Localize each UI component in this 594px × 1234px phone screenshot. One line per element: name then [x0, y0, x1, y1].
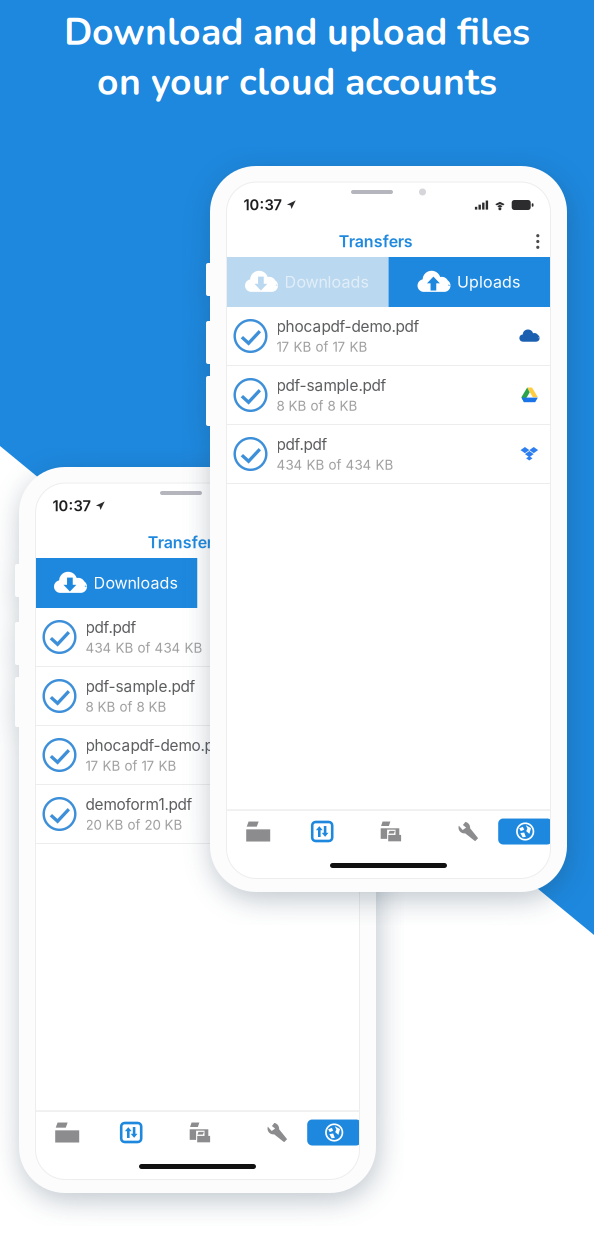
button[interactable]: Downloads: [226, 257, 388, 307]
staticText: 17 KB of 17 KB: [85, 758, 176, 774]
button[interactable]: Transfers: [295, 811, 349, 851]
staticText: 434 KB of 434 KB: [85, 640, 202, 656]
staticText: demoform1.pdf: [85, 795, 192, 814]
staticText: Transfers: [339, 232, 413, 251]
button[interactable]: Copy: [364, 811, 418, 851]
button[interactable]: Copy: [173, 1112, 227, 1152]
button[interactable]: Uploads: [388, 257, 550, 307]
button[interactable]: Settings: [441, 811, 495, 851]
button[interactable]: demoform1.pdf: [35, 785, 359, 843]
staticText: Downloads: [284, 272, 368, 292]
staticText: phocapdf-demo.pdf: [85, 736, 228, 755]
staticText: 8 KB of 8 KB: [85, 699, 166, 715]
staticText: 10:37: [52, 497, 90, 515]
button[interactable]: pdf-sample.pdf: [226, 366, 550, 424]
button[interactable]: pdf-sample.pdf: [35, 667, 359, 725]
button[interactable]: Downloads: [35, 558, 197, 608]
button[interactable]: pdf.pdf: [226, 425, 550, 483]
staticText: 17 KB of 17 KB: [276, 339, 367, 355]
staticText: pdf-sample.pdf: [85, 677, 195, 696]
staticText: Downloads: [93, 573, 177, 593]
staticText: Download and upload files: [64, 7, 530, 58]
staticText: Uploads: [457, 272, 520, 292]
button[interactable]: Browser: [307, 1112, 361, 1152]
staticText: 20 KB of 20 KB: [85, 817, 182, 833]
button[interactable]: Files: [231, 811, 285, 851]
staticText: 8 KB of 8 KB: [276, 398, 357, 414]
button[interactable]: More options: [525, 229, 550, 254]
staticText: 434 KB of 434 KB: [276, 457, 393, 473]
staticText: pdf-sample.pdf: [276, 376, 386, 395]
staticText: Transfers: [148, 533, 222, 552]
button[interactable]: Transfers: [104, 1112, 158, 1152]
staticText: pdf.pdf: [276, 435, 327, 454]
staticText: phocapdf-demo.pdf: [276, 317, 419, 336]
button[interactable]: phocapdf-demo.pdf: [226, 307, 550, 365]
button[interactable]: Browser: [498, 811, 552, 851]
button[interactable]: pdf.pdf: [35, 608, 359, 666]
staticText: pdf.pdf: [85, 618, 136, 637]
staticText: on your cloud accounts: [97, 57, 497, 108]
button[interactable]: Settings: [250, 1112, 304, 1152]
button[interactable]: Files: [40, 1112, 94, 1152]
button[interactable]: phocapdf-demo.pdf: [35, 726, 359, 784]
staticText: 10:37: [243, 196, 281, 214]
